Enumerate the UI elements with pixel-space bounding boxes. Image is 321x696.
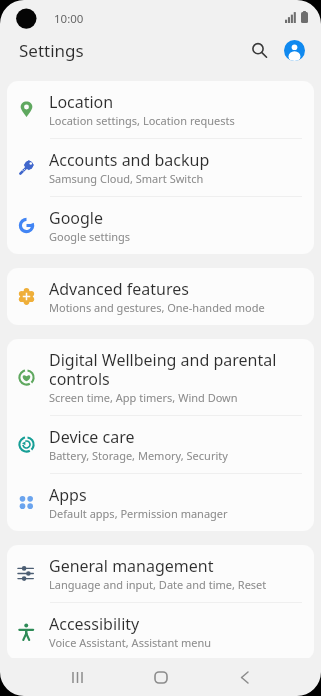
- staticText: Motions and gestures, One-handed mode: [49, 300, 265, 315]
- button[interactable]: Back: [222, 658, 266, 696]
- staticText: Language and input, Date and time, Reset: [49, 577, 267, 592]
- staticText: Screen time, App timers, Wind Down: [49, 390, 238, 405]
- button[interactable]: Digital Wellbeing and parental controls: [7, 339, 314, 415]
- button[interactable]: Recents: [55, 658, 99, 696]
- staticText: Apps: [49, 484, 87, 506]
- button[interactable]: Account: [278, 36, 310, 65]
- button[interactable]: Apps: [7, 474, 314, 531]
- staticText: Device care: [49, 426, 135, 448]
- button[interactable]: Accounts and backup: [7, 139, 314, 196]
- staticText: 10:00: [54, 11, 84, 27]
- button[interactable]: Home: [139, 658, 183, 696]
- button[interactable]: Device care: [7, 416, 314, 473]
- staticText: Accounts and backup: [49, 149, 210, 171]
- staticText: Google settings: [49, 229, 131, 244]
- staticText: Settings: [19, 39, 84, 62]
- button[interactable]: General management: [7, 545, 314, 602]
- staticText: Google: [49, 207, 104, 229]
- staticText: Location: [49, 91, 114, 113]
- staticText: Digital Wellbeing and parental controls: [49, 349, 295, 390]
- button[interactable]: Search: [239, 36, 273, 65]
- staticText: Voice Assistant, Assistant menu: [49, 635, 212, 650]
- button[interactable]: Google: [7, 197, 314, 254]
- staticText: General management: [49, 555, 214, 577]
- staticText: Accessibility: [49, 613, 140, 635]
- staticText: Samsung Cloud, Smart Switch: [49, 171, 204, 186]
- button[interactable]: Location: [7, 81, 314, 138]
- staticText: Location settings, Location requests: [49, 113, 235, 128]
- button[interactable]: Advanced features: [7, 268, 314, 325]
- button[interactable]: Accessibility: [7, 603, 314, 660]
- staticText: Advanced features: [49, 278, 189, 300]
- staticText: Battery, Storage, Memory, Security: [49, 448, 228, 463]
- staticText: Default apps, Permission manager: [49, 506, 228, 521]
